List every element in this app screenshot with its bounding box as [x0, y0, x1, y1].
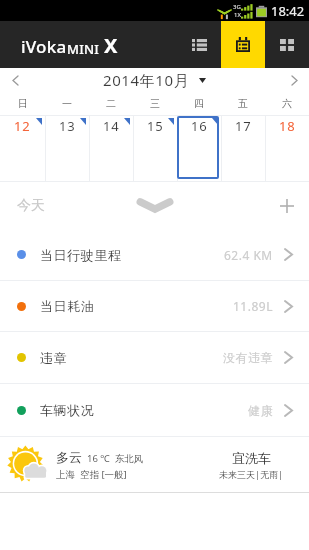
staticText: 1X: [234, 11, 241, 19]
staticText: X: [104, 32, 118, 59]
staticText: 15: [147, 117, 164, 135]
button[interactable]: 违章: [0, 332, 309, 383]
staticText: 健康: [248, 403, 273, 418]
staticText: iVoka: [21, 35, 67, 58]
staticText: 16: [191, 117, 208, 135]
button[interactable]: Previous month: [0, 68, 30, 92]
staticText: 今天: [17, 197, 45, 215]
staticText: 多云: [56, 449, 82, 465]
staticText: 没有违章: [223, 350, 273, 365]
staticText: MINI: [67, 40, 100, 58]
staticText: 18:42: [271, 2, 305, 20]
staticText: 14: [103, 117, 120, 135]
staticText: 车辆状况: [40, 402, 95, 418]
staticText: 62.4 KM: [224, 247, 273, 263]
staticText: 11.89L: [233, 298, 273, 314]
staticText: 一: [62, 97, 72, 110]
staticText: 16 ℃ 东北风: [87, 452, 144, 465]
button[interactable]: 当日行驶里程: [0, 229, 309, 280]
button[interactable]: 18: [265, 116, 309, 181]
staticText: 日: [18, 97, 28, 110]
button[interactable]: 14: [89, 116, 133, 181]
staticText: 2014年10月: [103, 70, 190, 90]
button[interactable]: Calendar view: [221, 21, 265, 68]
staticText: 上海 空指 [一般]: [56, 468, 127, 481]
button[interactable]: Add: [265, 184, 309, 228]
staticText: 六: [282, 97, 292, 110]
staticText: 二: [106, 97, 116, 110]
button[interactable]: 多云: [0, 437, 309, 492]
staticText: 四: [194, 97, 204, 110]
staticText: 宜洗车: [232, 450, 271, 466]
button[interactable]: 17: [221, 116, 265, 181]
button[interactable]: List view: [177, 21, 221, 68]
staticText: 12: [14, 117, 31, 135]
staticText: 违章: [40, 350, 68, 366]
button[interactable]: 12: [0, 116, 45, 181]
staticText: 未来三天|无雨|: [219, 468, 283, 480]
staticText: 当日行驶里程: [40, 247, 122, 263]
button[interactable]: 16: [177, 116, 221, 181]
button[interactable]: 15: [133, 116, 177, 181]
staticText: 三: [150, 97, 160, 110]
staticText: 17: [235, 117, 252, 135]
button[interactable]: Next month: [279, 68, 309, 92]
staticText: 3G: [233, 3, 241, 11]
button[interactable]: Grid view: [265, 21, 309, 68]
staticText: 13: [59, 117, 76, 135]
button[interactable]: 13: [45, 116, 89, 181]
staticText: 当日耗油: [40, 298, 95, 314]
staticText: 18: [279, 117, 296, 135]
staticText: 五: [238, 97, 248, 110]
button[interactable]: 当日耗油: [0, 281, 309, 331]
button[interactable]: 车辆状况: [0, 384, 309, 436]
